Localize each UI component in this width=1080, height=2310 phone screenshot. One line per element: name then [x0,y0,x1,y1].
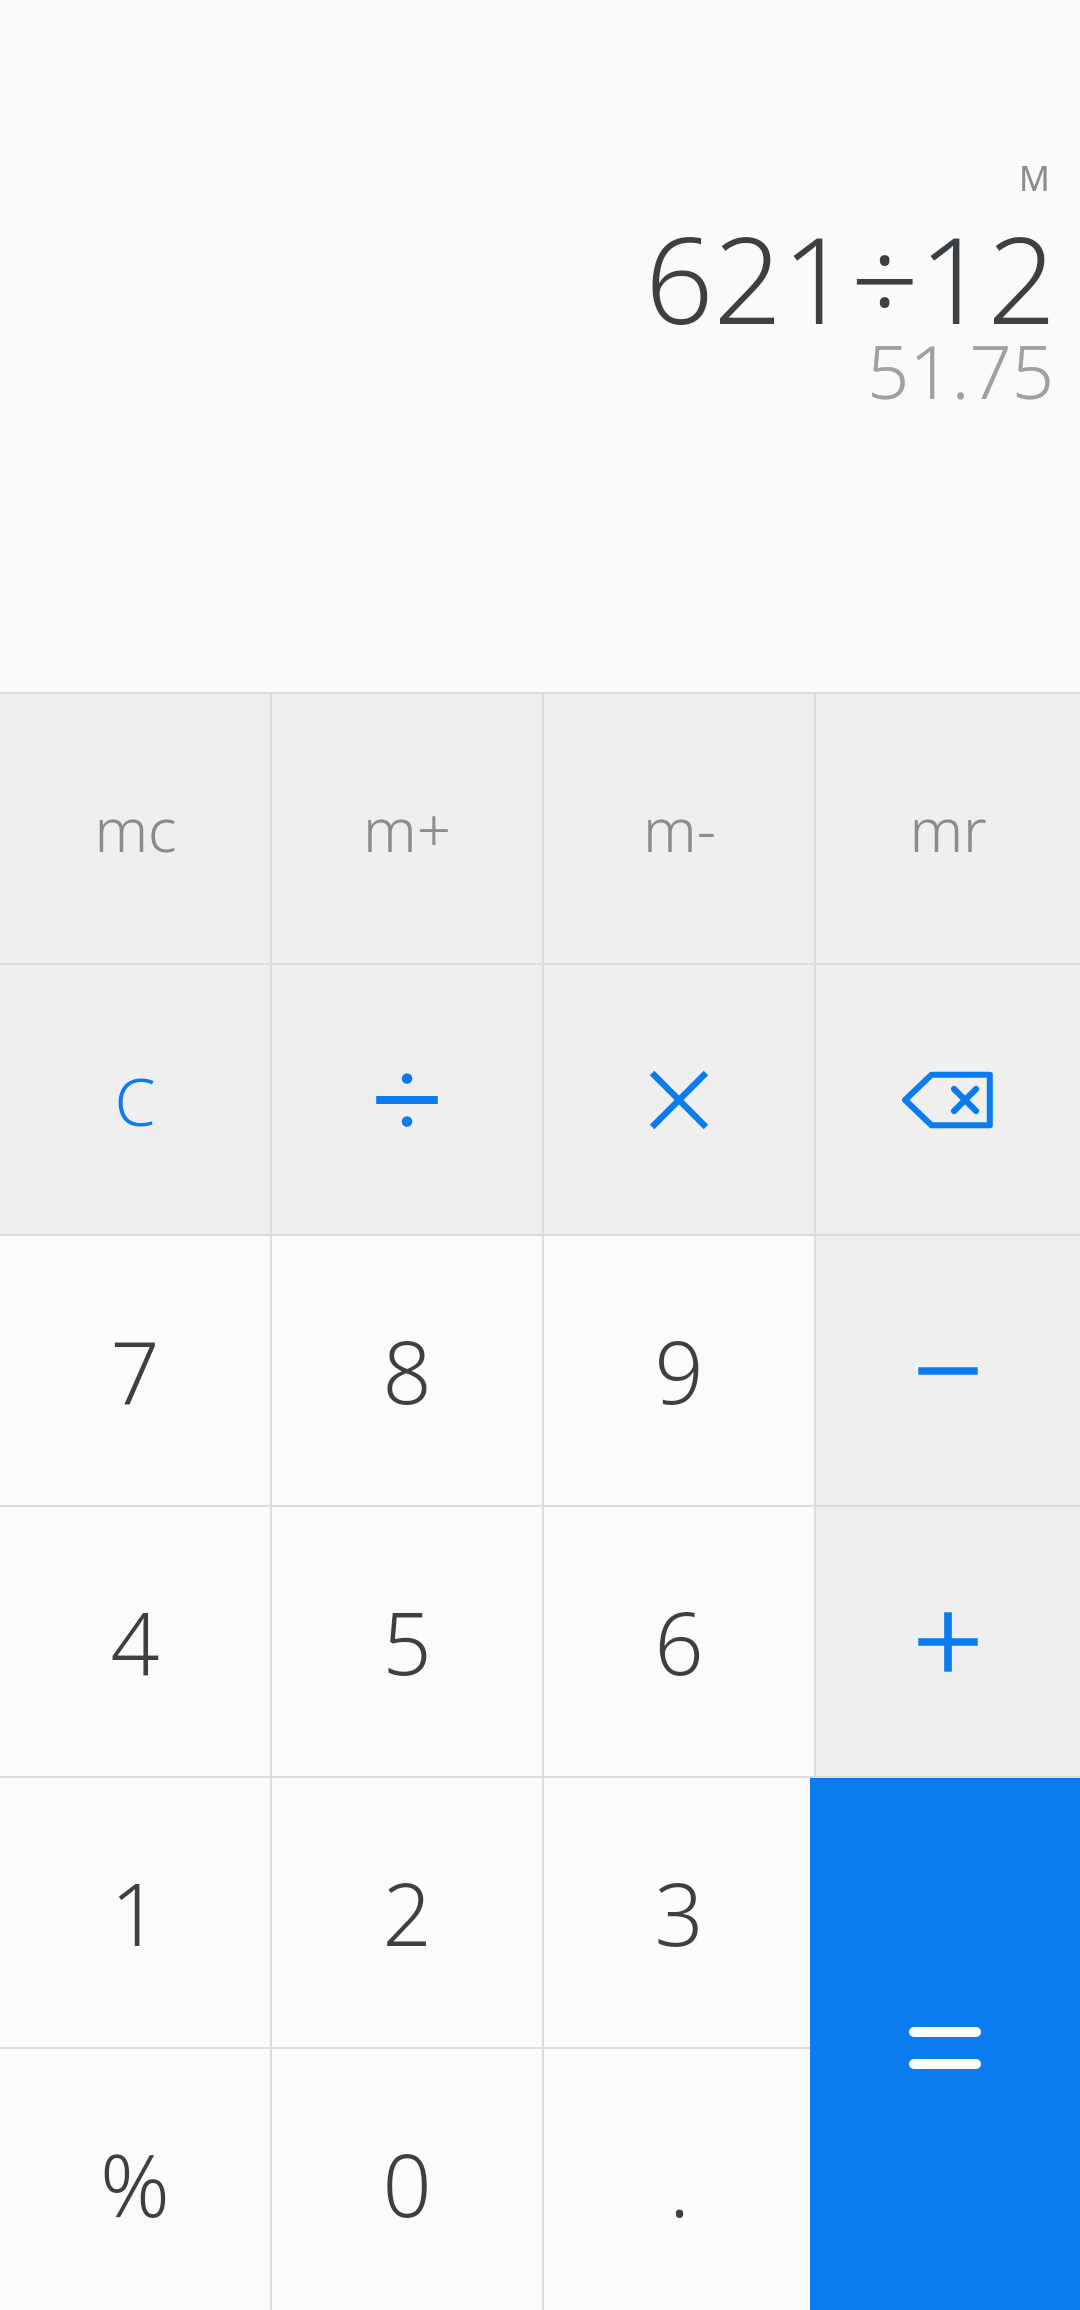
staticText: 0 [382,2125,432,2242]
button[interactable]: mc [0,694,270,963]
button[interactable]: 0 [272,2049,542,2310]
staticText: 2 [382,1854,432,1971]
button[interactable]: Equals [810,1778,1080,2310]
button[interactable]: Minus [816,1236,1080,1505]
button[interactable]: m+ [272,694,542,963]
staticText: 7 [110,1312,160,1429]
button[interactable]: mr [816,694,1080,963]
staticText: 9 [654,1312,704,1429]
button[interactable]: Divide [272,965,542,1234]
staticText: m- [643,788,716,870]
button[interactable]: 2 [272,1778,542,2047]
staticText: 3 [654,1854,704,1971]
button[interactable]: 8 [272,1236,542,1505]
staticText: 4 [110,1583,160,1700]
button[interactable]: 4 [0,1507,270,1776]
staticText: 621÷12 [644,196,1056,359]
button[interactable]: m- [544,694,814,963]
staticText: m+ [363,788,451,870]
staticText: 6 [654,1583,704,1700]
button[interactable]: 9 [544,1236,814,1505]
button[interactable]: Plus [816,1507,1080,1776]
staticText: 51.75 [866,320,1054,421]
staticText: mc [94,788,177,870]
button[interactable]: 6 [544,1507,814,1776]
staticText: 8 [382,1312,432,1429]
button[interactable]: C [0,965,270,1234]
button[interactable]: . [544,2049,814,2310]
button[interactable]: 7 [0,1236,270,1505]
staticText: C [114,1055,156,1145]
button[interactable]: 1 [0,1778,270,2047]
staticText: mr [909,788,987,870]
staticText: 5 [382,1583,432,1700]
button[interactable]: 3 [544,1778,814,2047]
button[interactable]: % [0,2049,270,2310]
staticText: . [669,2125,690,2242]
staticText: % [100,2125,170,2242]
button[interactable]: Multiply [544,965,814,1234]
staticText: 1 [110,1854,160,1971]
button[interactable]: Backspace [816,965,1080,1234]
button[interactable]: 5 [272,1507,542,1776]
staticText: M [1019,155,1050,201]
